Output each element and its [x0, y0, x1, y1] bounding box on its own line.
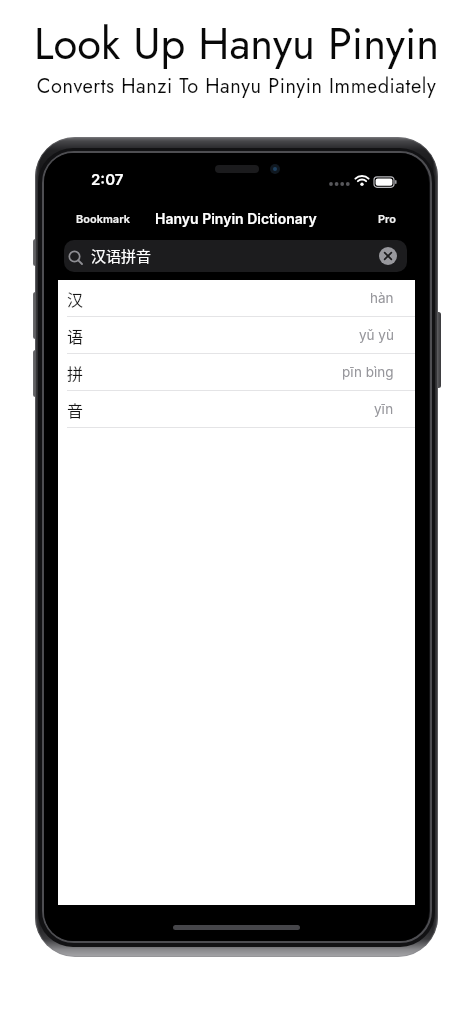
button[interactable]: 汉语拼音	[64, 240, 407, 272]
button[interactable]: 拼	[58, 354, 415, 391]
staticText: 音	[67, 398, 84, 421]
button[interactable]: 汉	[58, 280, 415, 317]
staticText: Look Up Hanyu Pinyin	[0, 12, 473, 75]
button[interactable]: 音	[58, 391, 415, 428]
button[interactable]	[379, 247, 397, 265]
staticText: 拼	[67, 361, 84, 384]
staticText: yīn	[374, 401, 394, 417]
staticText: yǔ yù	[359, 327, 394, 343]
staticText: 语	[67, 324, 84, 347]
button[interactable]: 语	[58, 317, 415, 354]
staticText: 汉语拼音	[91, 245, 152, 267]
staticText: Bookmark	[76, 212, 130, 225]
staticText: 汉	[67, 287, 84, 310]
staticText: Hanyu Pinyin Dictionary	[155, 210, 317, 227]
button[interactable]: Bookmark	[65, 207, 140, 229]
staticText: hàn	[370, 290, 394, 306]
staticText: pīn bìng	[342, 364, 394, 380]
staticText: 2:07	[91, 170, 124, 188]
staticText: Converts Hanzi To Hanyu Pinyin Immediate…	[0, 72, 473, 101]
button[interactable]: Pro	[365, 207, 409, 229]
staticText: Pro	[378, 212, 396, 225]
